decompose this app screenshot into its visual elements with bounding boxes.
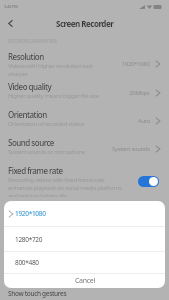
button[interactable]: 1920*1080 <box>4 201 165 226</box>
staticText: Sound source <box>8 137 54 148</box>
staticText: Higher quality means bigger file size <box>8 92 99 100</box>
staticText: System sounds or microphone <box>8 148 85 156</box>
staticText: Orientation of recorded videos <box>8 120 85 128</box>
staticText: 1280*720 <box>15 235 43 244</box>
staticText: sharper <box>8 70 28 77</box>
staticText: Fixed frame rate <box>8 165 63 176</box>
staticText: 800*480 <box>15 258 39 267</box>
staticText: 1920*1080 <box>15 209 46 218</box>
staticText: and reduces battery life. <box>8 192 68 197</box>
staticText: Cancel <box>75 276 95 286</box>
button[interactable]: 1280*720 <box>4 227 165 251</box>
staticText: Orientation <box>8 109 47 120</box>
staticText: Auto <box>138 117 150 125</box>
button[interactable]: 800*480 <box>4 252 165 273</box>
staticText: Show touch gestures <box>8 289 67 298</box>
staticText: Recording videos with fixed frame rate <box>8 176 105 184</box>
button[interactable]: Sound source <box>0 133 169 161</box>
staticText: 3:44 PM <box>4 4 18 9</box>
button[interactable]: Orientation <box>0 105 169 133</box>
staticText: 1920*1080 <box>122 60 150 68</box>
staticText: Videos with higher resolution look <box>8 62 93 70</box>
staticText: Screen Recorder <box>56 18 114 29</box>
staticText: Resolution <box>8 51 44 62</box>
button[interactable]: Fixed frame rate toggle <box>138 176 159 187</box>
button[interactable]: Cancel <box>4 274 165 288</box>
staticText: System sounds <box>112 145 150 153</box>
staticText: RECORDING PARAMETERS <box>8 38 57 44</box>
staticText: 20Mbps <box>129 89 150 97</box>
staticText: Video quality <box>8 81 52 92</box>
button[interactable]: Fixed frame rate <box>0 161 169 197</box>
staticText: enhances playback on social media platfo… <box>8 184 122 192</box>
button[interactable]: Back <box>0 13 20 33</box>
button[interactable]: Resolution <box>0 47 169 77</box>
button[interactable]: Video quality <box>0 77 169 105</box>
